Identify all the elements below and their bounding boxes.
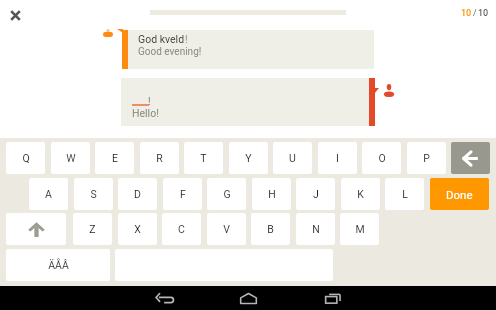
staticText: A <box>45 188 52 200</box>
button[interactable]: I <box>318 142 357 174</box>
button[interactable]: K <box>341 178 380 210</box>
staticText: B <box>267 223 274 235</box>
staticText: F <box>180 188 186 200</box>
staticText: E <box>112 152 118 164</box>
staticText: T <box>200 152 207 164</box>
button[interactable]: R <box>140 142 179 174</box>
staticText: W <box>66 152 76 164</box>
button[interactable]: M <box>340 213 379 245</box>
button[interactable]: W <box>51 142 90 174</box>
button[interactable]: Back <box>145 286 185 310</box>
button[interactable]: X <box>118 213 157 245</box>
staticText: K <box>357 188 364 200</box>
staticText: ! <box>148 95 151 107</box>
button[interactable]: J <box>296 178 335 210</box>
staticText: Hello! <box>132 107 159 119</box>
button[interactable]: D <box>118 178 157 210</box>
button[interactable]: Y <box>229 142 268 174</box>
button[interactable]: C <box>162 213 201 245</box>
button[interactable]: Q <box>6 142 45 174</box>
staticText: H <box>268 188 276 200</box>
button[interactable]: O <box>362 142 401 174</box>
staticText: ! <box>185 33 188 45</box>
staticText: L <box>402 188 408 200</box>
staticText: X <box>134 223 141 235</box>
staticText: / <box>473 8 477 19</box>
button[interactable]: Z <box>73 213 112 245</box>
button[interactable]: S <box>74 178 113 210</box>
staticText: J <box>313 188 319 200</box>
staticText: 10 <box>478 8 489 19</box>
staticText: Q <box>22 152 30 164</box>
button[interactable]: Close <box>2 2 28 28</box>
button[interactable]: Home <box>228 286 268 310</box>
button[interactable]: U <box>273 142 312 174</box>
button[interactable]: A <box>29 178 68 210</box>
button[interactable]: Backspace <box>451 142 490 174</box>
button[interactable]: V <box>207 213 246 245</box>
staticText: D <box>134 188 141 200</box>
staticText: 10 <box>461 8 472 19</box>
staticText: Y <box>245 152 252 164</box>
staticText: S <box>90 188 97 200</box>
button[interactable]: ÄÅÂ <box>6 249 110 281</box>
staticText: C <box>178 223 185 235</box>
staticText: I <box>336 152 339 164</box>
button[interactable]: E <box>95 142 134 174</box>
staticText: P <box>423 152 430 164</box>
button[interactable]: G <box>207 178 246 210</box>
button[interactable]: B <box>251 213 290 245</box>
staticText: Z <box>89 223 96 235</box>
staticText: Done <box>446 188 473 201</box>
button[interactable]: L <box>385 178 424 210</box>
button[interactable]: Done <box>430 178 489 210</box>
staticText: N <box>312 223 320 235</box>
staticText: ÄÅÂ <box>48 259 69 271</box>
staticText: V <box>223 223 230 235</box>
staticText: Good evening! <box>138 46 202 58</box>
button[interactable]: N <box>296 213 335 245</box>
button[interactable]: F <box>163 178 202 210</box>
staticText: God kveld <box>138 33 185 45</box>
staticText: U <box>289 152 296 164</box>
staticText: G <box>223 188 231 200</box>
button[interactable]: H <box>252 178 291 210</box>
staticText: M <box>355 223 365 235</box>
staticText: O <box>378 152 386 164</box>
button[interactable]: P <box>407 142 446 174</box>
button[interactable]: T <box>184 142 223 174</box>
button[interactable]: Shift <box>6 213 66 245</box>
staticText: R <box>156 152 163 164</box>
button[interactable]: Recents <box>313 286 353 310</box>
